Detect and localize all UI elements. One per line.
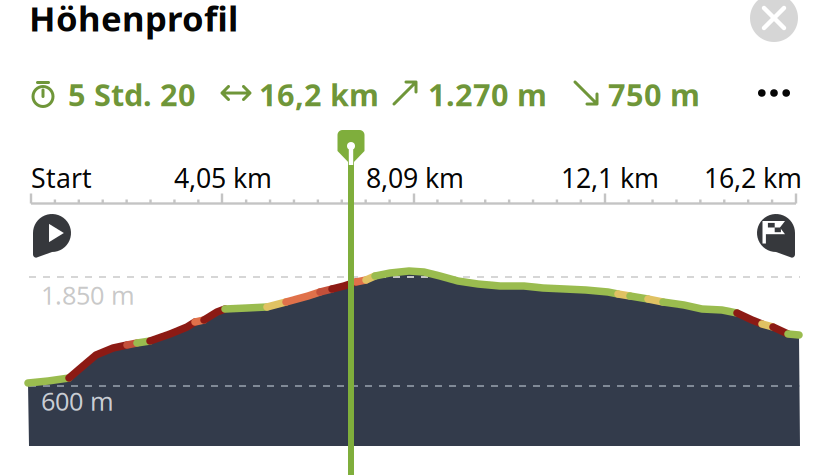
- staticText: 16,2 km: [704, 160, 802, 195]
- staticText: 5 Std. 20: [68, 74, 196, 115]
- staticText: 4,05 km: [174, 160, 272, 195]
- staticText: Start: [31, 160, 92, 195]
- staticText: 12,1 km: [561, 160, 659, 195]
- staticText: 1.270 m: [428, 74, 547, 115]
- staticText: Höhenprofil: [29, 0, 238, 41]
- staticText: 1.850 m: [41, 278, 135, 312]
- staticText: 8,09 km: [366, 160, 464, 195]
- staticText: 600 m: [41, 384, 114, 418]
- staticText: 750 m: [608, 74, 700, 115]
- staticText: 16,2 km: [259, 74, 379, 115]
- button[interactable]: Close: [750, 0, 798, 42]
- button[interactable]: More options: [750, 69, 798, 117]
